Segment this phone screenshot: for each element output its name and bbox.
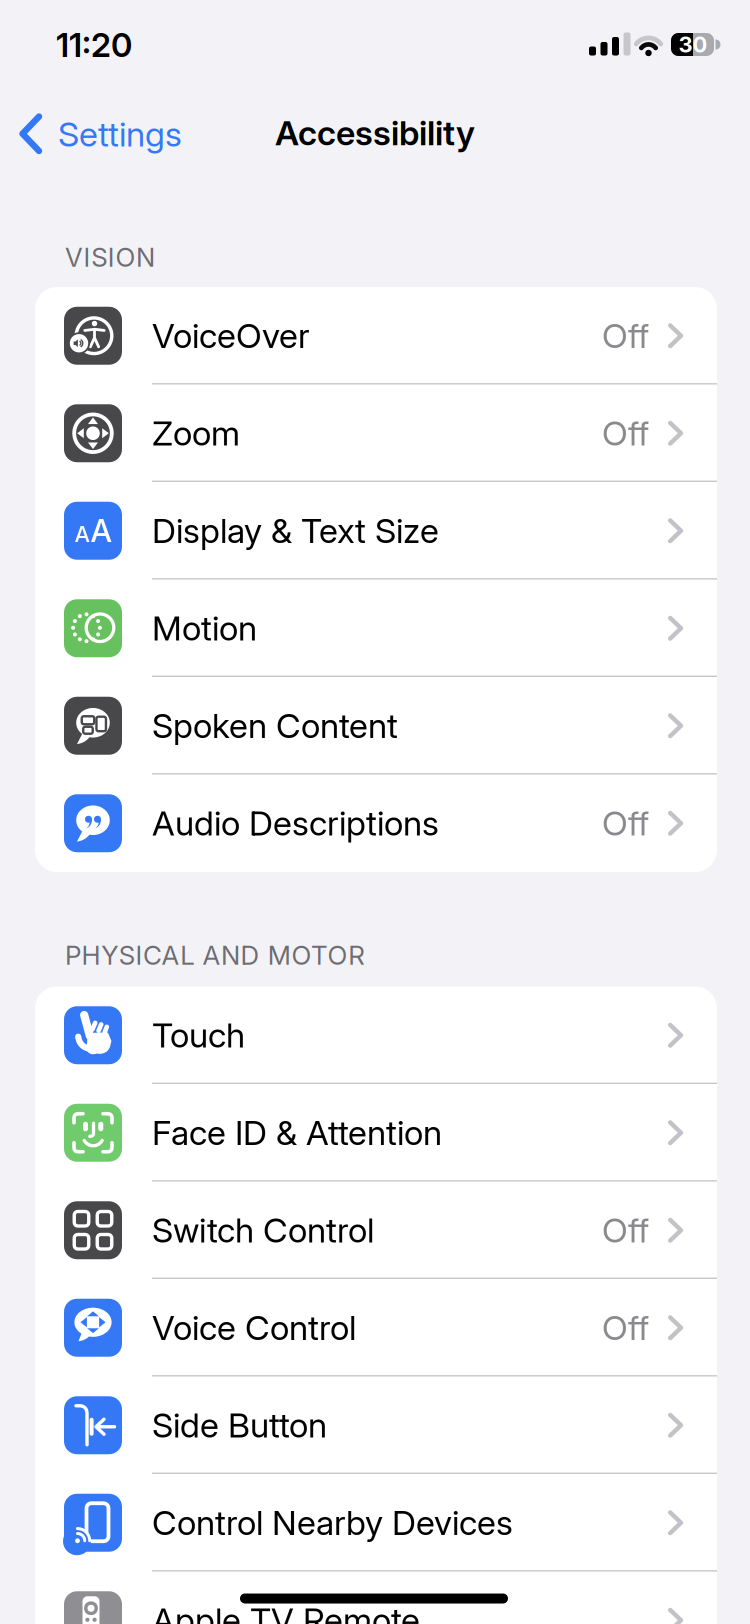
button[interactable]: Control Nearby Devices	[35, 1474, 717, 1571]
staticText: Side Button	[152, 1405, 327, 1445]
staticText: A	[74, 521, 89, 547]
staticText: Zoom	[152, 413, 240, 453]
button[interactable]: Audio Descriptions	[35, 774, 717, 872]
staticText: Spoken Content	[152, 706, 398, 746]
button[interactable]: Apple TV Remote	[35, 1571, 717, 1624]
staticText: A	[90, 512, 111, 549]
button[interactable]: Motion	[35, 579, 717, 677]
button[interactable]: Spoken Content	[35, 677, 717, 774]
staticText: Apple TV Remote	[152, 1600, 420, 1624]
staticText: Display & Text Size	[152, 511, 439, 551]
staticText: 30	[678, 31, 707, 57]
staticText: Switch Control	[152, 1210, 374, 1250]
staticText: PHYSICAL AND MOTOR	[65, 940, 365, 971]
staticText: Audio Descriptions	[152, 803, 439, 843]
staticText: Off	[602, 1210, 649, 1250]
staticText: Motion	[152, 608, 257, 648]
staticText: Face ID & Attention	[152, 1113, 442, 1153]
staticText: Off	[602, 1308, 649, 1348]
button[interactable]: Face ID & Attention	[35, 1084, 717, 1181]
staticText: Accessibility	[275, 113, 475, 153]
staticText: Touch	[152, 1015, 245, 1055]
staticText: Voice Control	[152, 1308, 356, 1348]
button[interactable]: Touch	[35, 986, 717, 1084]
button[interactable]: Settings	[20, 114, 182, 154]
button[interactable]: Switch Control	[35, 1181, 717, 1279]
staticText: Control Nearby Devices	[152, 1503, 513, 1543]
button[interactable]: VoiceOver	[35, 287, 717, 384]
staticText: VISION	[65, 242, 155, 273]
staticText: VoiceOver	[152, 316, 310, 356]
button[interactable]: A	[35, 482, 717, 579]
button[interactable]: Zoom	[35, 384, 717, 482]
staticText: Off	[602, 413, 649, 453]
staticText: Off	[602, 803, 649, 843]
staticText: Settings	[58, 114, 182, 154]
button[interactable]: Side Button	[35, 1376, 717, 1474]
staticText: Off	[602, 316, 649, 356]
staticText: 11:20	[56, 25, 132, 64]
button[interactable]: Voice Control	[35, 1279, 717, 1376]
